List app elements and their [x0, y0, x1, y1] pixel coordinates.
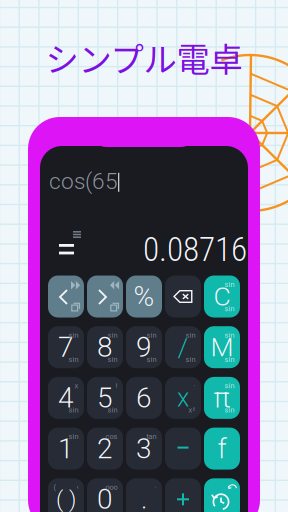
staticText: sin [224, 304, 234, 313]
staticText: tan [146, 432, 156, 441]
button[interactable] [204, 478, 240, 512]
staticText: cos [105, 432, 117, 441]
button[interactable]: / [165, 326, 201, 368]
staticText: 7 [58, 331, 74, 364]
staticText: . [141, 484, 147, 512]
staticText: ‹ [76, 483, 78, 491]
button[interactable] [165, 428, 201, 470]
staticText: % [133, 280, 154, 313]
staticText: ( ) [56, 486, 76, 512]
staticText: sin [107, 331, 117, 339]
staticText: sin [185, 355, 195, 364]
staticText: sin [224, 331, 234, 339]
staticText: sin [68, 406, 78, 414]
staticText: sin [68, 355, 78, 364]
staticText: · [193, 381, 195, 390]
staticText: sin [146, 355, 156, 364]
button[interactable]: . [126, 478, 162, 512]
staticText: 2 [97, 432, 113, 465]
staticText: · [154, 483, 156, 491]
staticText: π [213, 381, 230, 414]
staticText: 6 [136, 381, 152, 414]
button[interactable] [165, 275, 201, 317]
staticText: sin [68, 331, 78, 339]
staticText: ( [53, 483, 56, 491]
staticText: f [217, 432, 226, 465]
staticText: 8 [97, 331, 113, 364]
staticText: 4 [58, 381, 74, 414]
staticText: 9 [136, 331, 152, 364]
staticText: 5 [97, 381, 113, 414]
staticText: sin [224, 406, 234, 414]
button[interactable]: 1 [48, 428, 84, 470]
button[interactable]: 2 [87, 428, 123, 470]
staticText: sin [146, 331, 156, 339]
staticText: cos(65 [49, 168, 118, 195]
button[interactable]: π [204, 377, 240, 419]
staticText: sin [68, 432, 78, 441]
staticText: sin [107, 406, 117, 414]
button[interactable]: 4 [48, 377, 84, 419]
staticText: 1 [58, 432, 74, 465]
button[interactable]: M [204, 326, 240, 368]
button[interactable]: 3 [126, 428, 162, 470]
button[interactable] [48, 275, 84, 317]
staticText: x [177, 383, 189, 413]
staticText: 3 [136, 432, 152, 465]
staticText: M [210, 332, 233, 363]
staticText: x² [188, 406, 195, 414]
staticText: 0 [97, 483, 113, 512]
staticText: ! [115, 381, 117, 390]
staticText: sin [224, 280, 234, 289]
staticText: ooo [105, 483, 117, 491]
button[interactable]: 0 [87, 478, 123, 512]
button[interactable]: C [204, 275, 240, 317]
button[interactable]: f [204, 428, 240, 470]
button[interactable] [87, 275, 123, 317]
staticText: sin [185, 331, 195, 339]
staticText: sin [224, 381, 234, 390]
staticText: sin [107, 355, 117, 364]
button[interactable]: ( ) [48, 478, 84, 512]
button[interactable]: x [165, 377, 201, 419]
button[interactable]: % [126, 275, 162, 317]
button[interactable]: 6 [126, 377, 162, 419]
staticText: / [177, 332, 188, 363]
button[interactable]: 7 [48, 326, 84, 368]
button[interactable]: 8 [87, 326, 123, 368]
staticText: x [74, 381, 78, 390]
staticText: シンプル電卓 [45, 33, 242, 81]
button[interactable] [165, 478, 201, 512]
button[interactable]: 9 [126, 326, 162, 368]
staticText: C [213, 281, 230, 312]
staticText: sin [224, 355, 234, 364]
button[interactable]: 5 [87, 377, 123, 419]
staticText: 0.08716 [143, 230, 247, 269]
